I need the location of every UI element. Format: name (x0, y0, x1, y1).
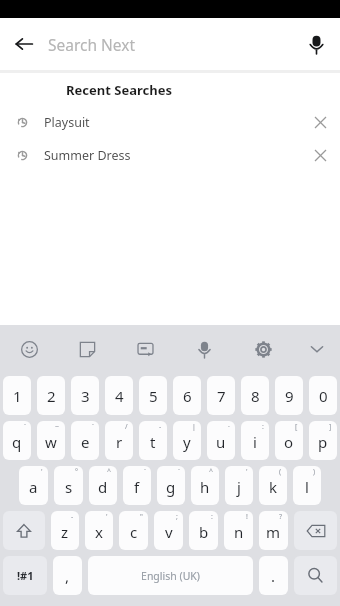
button[interactable]: Collapse keyboard (293, 325, 340, 373)
staticText: 6 (183, 386, 192, 406)
button[interactable]: ) (293, 466, 321, 505)
button[interactable]: 8 (241, 376, 269, 415)
staticText: ? (279, 512, 283, 522)
button[interactable]: - (139, 421, 167, 460)
button[interactable]: : (241, 421, 269, 460)
button[interactable]: 1 (3, 376, 31, 415)
staticText: ~ (55, 422, 60, 432)
staticText: o (284, 432, 294, 452)
button[interactable]: ' (19, 466, 48, 505)
button[interactable]: English (UK) (88, 556, 253, 595)
button[interactable]: ' (85, 511, 113, 550)
button[interactable]: Back (0, 20, 48, 68)
button[interactable]: Remove Playsuit (300, 106, 340, 139)
staticText: l (305, 477, 309, 497)
button[interactable]: " (119, 511, 148, 550)
staticText: ° (75, 467, 78, 477)
button[interactable]: , (53, 556, 82, 595)
button[interactable]: - (51, 511, 79, 550)
button[interactable]: Voice input (175, 325, 234, 373)
button[interactable]: ` (123, 466, 151, 505)
staticText: 1 (13, 386, 22, 406)
staticText: q (12, 432, 22, 452)
staticText: / (125, 422, 128, 432)
button[interactable]: ] (309, 421, 337, 460)
button[interactable]: 9 (275, 376, 303, 415)
button[interactable]: Playsuit (0, 106, 340, 139)
button[interactable]: Emoji (0, 325, 58, 373)
staticText: a (29, 477, 38, 497)
staticText: j (237, 477, 241, 497)
button[interactable]: 7 (207, 376, 235, 415)
button[interactable]: Search (294, 556, 337, 595)
button[interactable]: Summer Dress (0, 139, 340, 172)
staticText: 5 (149, 386, 158, 406)
button[interactable]: ´ (71, 421, 99, 460)
staticText: ` (178, 467, 180, 477)
staticText: m (266, 522, 281, 542)
staticText: 9 (285, 386, 294, 406)
staticText: !#1 (17, 568, 34, 583)
staticText: ' (246, 467, 248, 477)
button[interactable]: ^ (191, 466, 219, 505)
staticText: Playsuit (44, 114, 90, 131)
button[interactable]: !#1 (3, 556, 47, 595)
button[interactable]: 3 (71, 376, 99, 415)
staticText: ( (279, 467, 282, 477)
button[interactable]: Backspace (294, 511, 337, 550)
staticText: " (140, 512, 143, 522)
button[interactable]: [ (275, 421, 303, 460)
staticText: v (165, 522, 173, 542)
button[interactable]: 5 (139, 376, 167, 415)
staticText: | (192, 422, 196, 432)
staticText: z (61, 522, 69, 542)
staticText: b (199, 522, 209, 542)
button[interactable]: Remove Summer Dress (300, 139, 340, 172)
staticText: 2 (47, 386, 56, 406)
staticText: w (45, 432, 57, 452)
button[interactable]: ° (54, 466, 83, 505)
staticText: : (211, 512, 213, 522)
staticText: d (98, 477, 108, 497)
button[interactable]: GIF (116, 325, 175, 373)
button[interactable]: ? (259, 511, 288, 550)
staticText: - (71, 512, 74, 522)
staticText: t (150, 432, 156, 452)
button[interactable]: . (259, 556, 288, 595)
staticText: ; (176, 512, 178, 522)
staticText: ] (329, 422, 332, 432)
button[interactable]: ^ (89, 466, 117, 505)
button[interactable]: ` (157, 466, 185, 505)
staticText: h (200, 477, 210, 497)
staticText: Recent Searches (66, 81, 172, 99)
button[interactable]: Voice search (292, 20, 340, 68)
staticText: p (318, 432, 328, 452)
button[interactable]: ~ (37, 421, 65, 460)
staticText: 0 (319, 386, 328, 406)
button[interactable]: | (173, 421, 201, 460)
button[interactable]: Stickers (58, 325, 116, 373)
button[interactable]: ; (154, 511, 183, 550)
button[interactable]: Shift (3, 511, 45, 550)
staticText: ´ (92, 422, 94, 432)
button[interactable]: / (105, 421, 133, 460)
button[interactable]: ` (3, 421, 31, 460)
button[interactable]: ( (259, 466, 287, 505)
button[interactable]: 6 (173, 376, 201, 415)
button[interactable]: : (189, 511, 218, 550)
button[interactable]: 0 (309, 376, 337, 415)
button[interactable]: 2 (37, 376, 65, 415)
button[interactable]: 4 (105, 376, 133, 415)
staticText: 8 (251, 386, 260, 406)
button[interactable]: ' (225, 466, 253, 505)
staticText: r (116, 432, 123, 452)
button[interactable]: · (207, 421, 235, 460)
staticText: ^ (107, 467, 112, 477)
staticText: - (159, 422, 162, 432)
staticText: u (216, 432, 226, 452)
button[interactable]: Settings (234, 325, 293, 373)
staticText: y (183, 432, 191, 452)
staticText: ` (144, 467, 146, 477)
button[interactable]: ! (224, 511, 253, 550)
staticText: , (65, 566, 70, 586)
